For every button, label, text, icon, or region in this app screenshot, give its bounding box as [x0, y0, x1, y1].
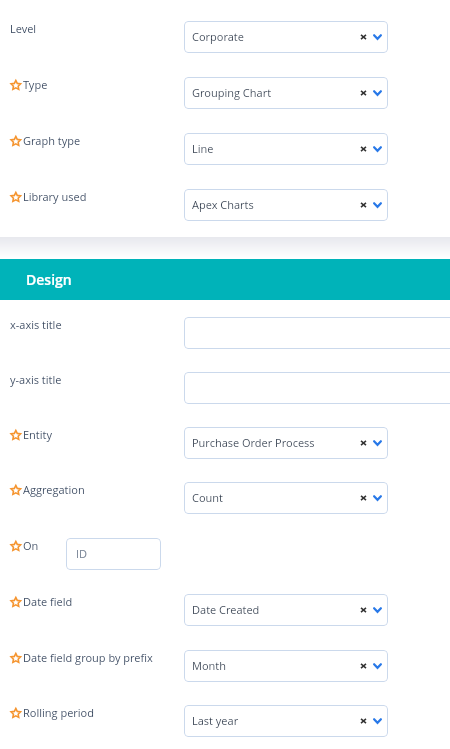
- staticText: Month: [192, 658, 226, 673]
- button[interactable]: ID: [66, 538, 161, 570]
- other: Clear: [360, 718, 367, 724]
- staticText: ID: [76, 546, 88, 561]
- button[interactable]: [184, 317, 450, 349]
- button[interactable]: [184, 372, 450, 404]
- other: Open dropdown: [373, 440, 382, 446]
- button[interactable]: Last year: [184, 705, 388, 737]
- button[interactable]: Purchase Order Process: [184, 427, 388, 459]
- other: Open dropdown: [373, 607, 382, 613]
- staticText: Date field group by prefix: [23, 650, 153, 665]
- staticText: Aggregation: [23, 482, 85, 497]
- staticText: Purchase Order Process: [192, 435, 315, 450]
- staticText: Graph type: [23, 133, 81, 148]
- other: Clear: [360, 90, 367, 96]
- button[interactable]: Design: [0, 259, 450, 300]
- other: Clear: [360, 607, 367, 613]
- other: Clear: [360, 202, 367, 208]
- staticText: x-axis title: [10, 317, 62, 332]
- other: Open dropdown: [373, 495, 382, 501]
- other: Open dropdown: [373, 663, 382, 669]
- staticText: y-axis title: [10, 372, 62, 387]
- staticText: Type: [23, 77, 48, 92]
- other: Open dropdown: [373, 202, 382, 208]
- button[interactable]: Apex Charts: [184, 189, 388, 221]
- staticText: Date field: [23, 594, 73, 609]
- other: Clear: [360, 440, 367, 446]
- other: Clear: [360, 495, 367, 501]
- other: Open dropdown: [373, 90, 382, 96]
- staticText: Rolling period: [23, 705, 94, 720]
- button[interactable]: Month: [184, 650, 388, 682]
- staticText: Entity: [23, 427, 52, 442]
- staticText: Apex Charts: [192, 197, 254, 212]
- staticText: Date Created: [192, 602, 260, 617]
- staticText: Library used: [23, 189, 87, 204]
- other: Clear: [360, 663, 367, 669]
- button[interactable]: Corporate: [184, 21, 388, 53]
- other: Open dropdown: [373, 146, 382, 152]
- staticText: Count: [192, 490, 223, 505]
- button[interactable]: Count: [184, 482, 388, 514]
- staticText: Last year: [192, 713, 239, 728]
- staticText: Level: [10, 21, 37, 36]
- staticText: Corporate: [192, 29, 244, 44]
- other: Clear: [360, 34, 367, 40]
- other: Clear: [360, 146, 367, 152]
- staticText: Grouping Chart: [192, 85, 272, 100]
- other: Open dropdown: [373, 718, 382, 724]
- button[interactable]: Date Created: [184, 594, 388, 626]
- button[interactable]: Line: [184, 133, 388, 165]
- button[interactable]: Grouping Chart: [184, 77, 388, 109]
- staticText: Design: [26, 270, 72, 289]
- staticText: On: [23, 538, 39, 553]
- staticText: Line: [192, 141, 214, 156]
- other: Open dropdown: [373, 34, 382, 40]
